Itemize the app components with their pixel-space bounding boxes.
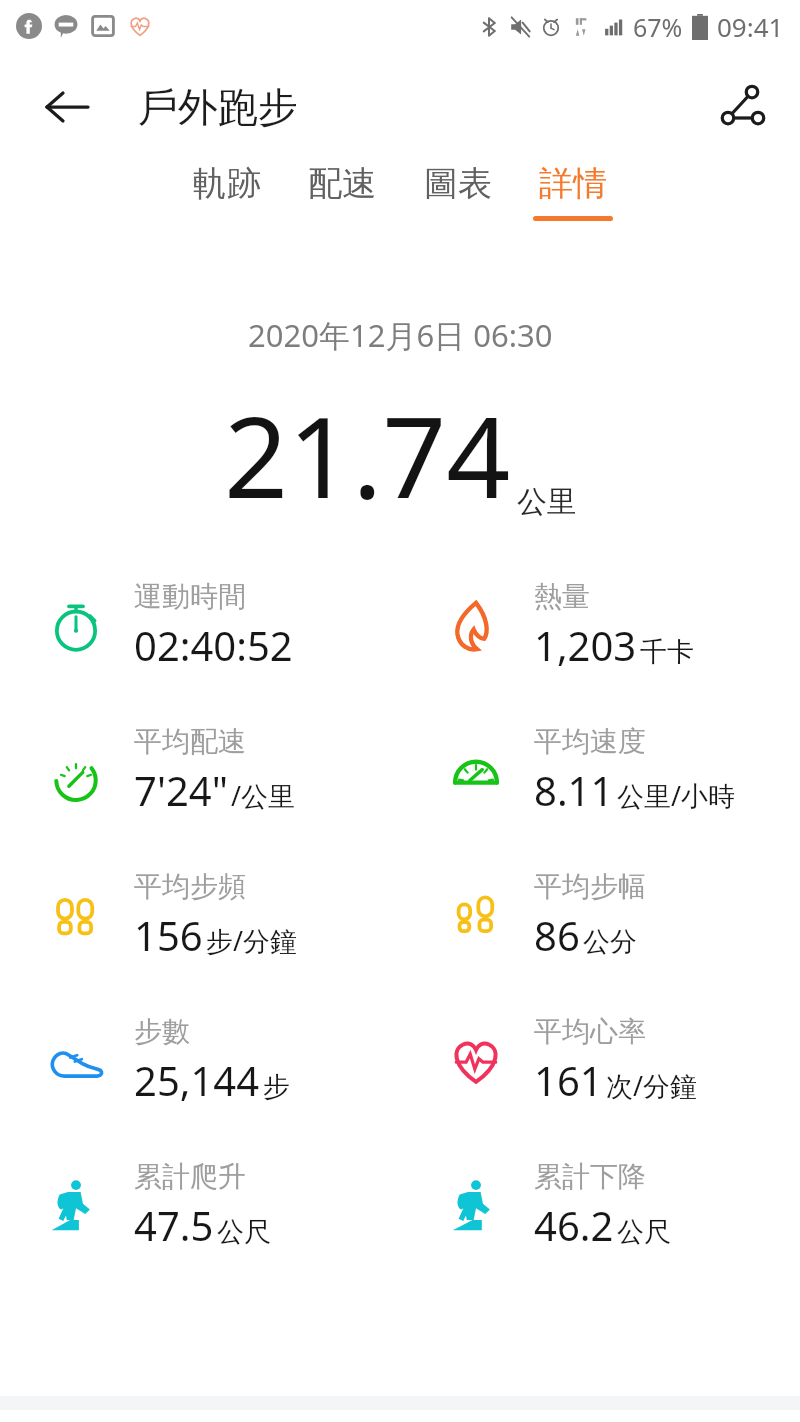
button[interactable]: Share [710,75,774,139]
staticText: 步數 [134,1014,190,1049]
staticText: /公里 [231,777,296,814]
staticText: 平均心率 [534,1014,646,1049]
staticText: 86 [534,908,580,962]
button[interactable]: 圖表 [409,162,507,216]
staticText: 46.2 [534,1198,614,1252]
button[interactable]: 平均步幅 [400,869,800,962]
button[interactable]: 平均速度 [400,724,800,817]
button[interactable]: 平均步頻 [0,869,400,962]
staticText: 平均配速 [134,724,246,759]
button[interactable]: 累計爬升 [0,1159,400,1252]
staticText: 2020年12月6日 06:30 [248,314,553,356]
button[interactable]: 平均配速 [0,724,400,817]
button[interactable]: 步數 [0,1014,400,1107]
staticText: 02:40:52 [134,618,293,672]
staticText: 戶外跑步 [138,82,298,132]
staticText: 千卡 [640,635,694,669]
staticText: 公尺 [617,1215,671,1249]
staticText: 25,144 [134,1053,260,1107]
staticText: 公里/小時 [617,777,736,814]
staticText: 累計下降 [534,1159,646,1194]
staticText: 詳情 [539,162,607,205]
staticText: 步 [263,1070,290,1104]
staticText: 1,203 [534,618,637,672]
staticText: 公里 [517,483,577,521]
staticText: 熱量 [534,579,590,614]
button[interactable]: 配速 [293,162,391,216]
staticText: 156 [134,908,203,962]
staticText: 8.11 [534,763,614,817]
staticText: 步/分鐘 [206,922,298,959]
staticText: 公尺 [217,1215,271,1249]
staticText: 67% [633,10,683,44]
staticText: 累計爬升 [134,1159,246,1194]
staticText: 21.74 [224,378,511,531]
button[interactable]: 軌跡 [178,162,276,216]
staticText: 161 [534,1053,603,1107]
staticText: 平均速度 [534,724,646,759]
staticText: 7'24" [134,763,228,817]
button[interactable]: 累計下降 [400,1159,800,1252]
staticText: 47.5 [134,1198,214,1252]
button[interactable]: 運動時間 [0,579,400,672]
button[interactable]: 詳情 [524,162,622,221]
staticText: 平均步幅 [534,869,646,904]
staticText: 圖表 [424,162,492,205]
button[interactable]: 平均心率 [400,1014,800,1107]
staticText: 09:41 [717,9,784,44]
staticText: 配速 [308,162,376,205]
staticText: 運動時間 [134,579,246,614]
staticText: 次/分鐘 [606,1067,698,1104]
button[interactable]: Back [38,78,96,136]
staticText: 公分 [583,925,637,959]
staticText: 平均步頻 [134,869,246,904]
button[interactable]: 熱量 [400,579,800,672]
staticText: 軌跡 [193,162,261,205]
